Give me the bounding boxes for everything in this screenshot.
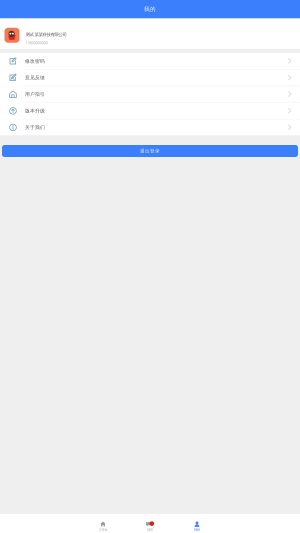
button[interactable]: 我的: [173, 514, 220, 533]
staticText: 意见反馈: [25, 75, 45, 81]
staticText: 消息: [147, 528, 153, 532]
button[interactable]: 退出登录: [2, 145, 298, 157]
button[interactable]: 修改密码: [0, 53, 300, 70]
staticText: 13800000000: [25, 41, 47, 45]
staticText: 用户指引: [25, 91, 45, 97]
button[interactable]: 工作台: [79, 514, 126, 533]
button[interactable]: 消息: [126, 514, 173, 533]
button[interactable]: 意见反馈: [0, 70, 300, 86]
staticText: 工作台: [98, 528, 107, 532]
staticText: 测试 某某科技有限公司: [25, 32, 66, 37]
staticText: 版本升级: [25, 108, 45, 114]
staticText: 修改密码: [25, 58, 45, 64]
button[interactable]: 用户指引: [0, 86, 300, 103]
button[interactable]: 测试 某某科技有限公司: [0, 18, 300, 49]
button[interactable]: 版本升级: [0, 103, 300, 119]
staticText: 退出登录: [140, 148, 160, 154]
staticText: 关于我们: [25, 124, 45, 130]
staticText: 我的: [194, 528, 200, 532]
staticText: 我的: [144, 6, 156, 13]
button[interactable]: 关于我们: [0, 119, 300, 135]
